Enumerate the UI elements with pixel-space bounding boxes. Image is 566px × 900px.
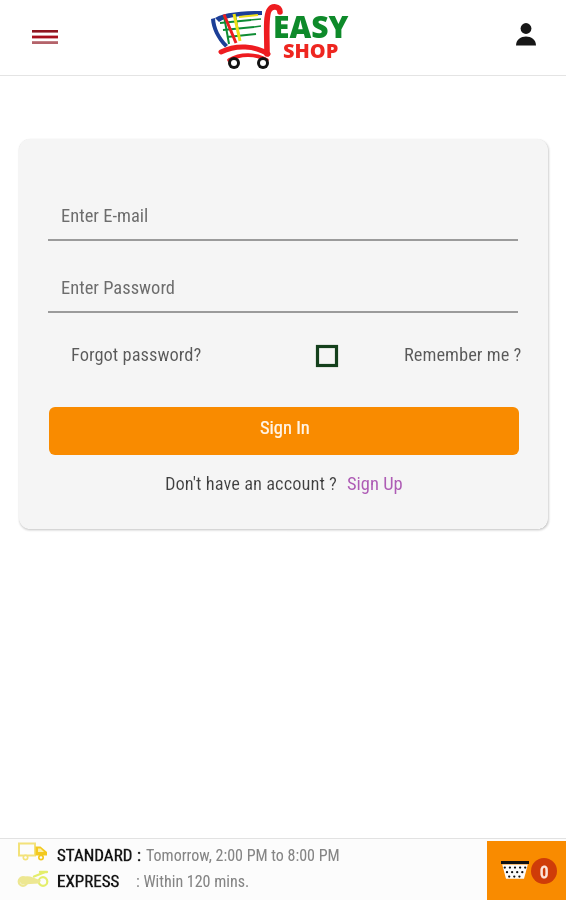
staticText: EXPRESS — [57, 871, 120, 891]
button[interactable]: Remember me checkbox — [315, 344, 338, 367]
staticText: Forgot password? — [71, 344, 202, 366]
staticText: Sign Up — [347, 473, 403, 495]
staticText: Don't have an account ? — [165, 473, 337, 495]
staticText: STANDARD — [57, 845, 133, 865]
button[interactable]: Sign In — [49, 407, 519, 455]
staticText: Sign In — [260, 417, 310, 439]
staticText: : Within 120 mins. — [136, 872, 250, 891]
staticText: Tomorrow, 2:00 PM to 8:00 PM — [146, 846, 340, 865]
staticText: EASY — [273, 6, 349, 47]
button[interactable]: Profile — [504, 12, 548, 56]
button[interactable]: Forgot password? — [67, 340, 206, 370]
staticText: Enter E-mail — [61, 205, 149, 227]
staticText: Enter Password — [61, 277, 176, 299]
staticText: SHOP — [283, 37, 339, 64]
button[interactable]: Cart — [487, 841, 566, 900]
staticText: 0 — [540, 862, 549, 882]
staticText: Remember me ? — [404, 344, 522, 366]
staticText: : — [137, 845, 141, 865]
button[interactable]: Sign Up — [347, 473, 403, 495]
button[interactable]: Menu — [23, 16, 67, 60]
